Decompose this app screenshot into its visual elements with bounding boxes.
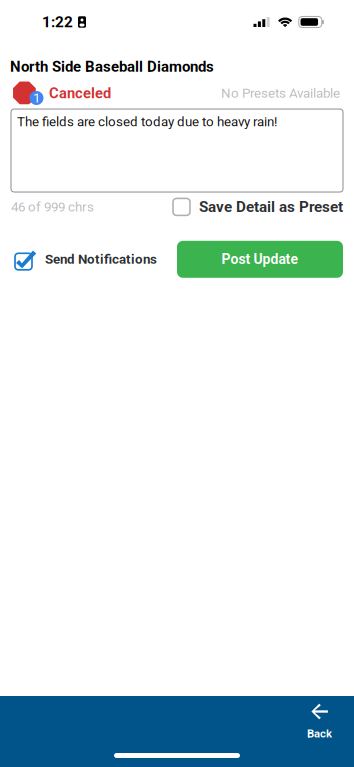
staticText: Canceled bbox=[49, 85, 111, 102]
staticText: Post Update bbox=[221, 251, 298, 267]
staticText: 46 of 999 chrs bbox=[11, 199, 94, 215]
staticText: Send Notifications bbox=[45, 251, 157, 267]
staticText: No Presets Available bbox=[221, 85, 340, 101]
staticText: Back bbox=[307, 727, 332, 740]
staticText: 1 bbox=[33, 90, 40, 106]
button[interactable]: Post Update bbox=[177, 241, 343, 278]
staticText: North Side Baseball Diamonds bbox=[10, 58, 214, 75]
button[interactable]: Send Notifications bbox=[12, 246, 157, 273]
staticText: 1:22 bbox=[42, 13, 73, 31]
staticText: Save Detail as Preset bbox=[199, 198, 343, 216]
button[interactable]: Back bbox=[307, 696, 354, 740]
button[interactable]: Save Detail as Preset bbox=[173, 198, 343, 216]
staticText: The fields are closed today due to heavy… bbox=[17, 114, 277, 130]
